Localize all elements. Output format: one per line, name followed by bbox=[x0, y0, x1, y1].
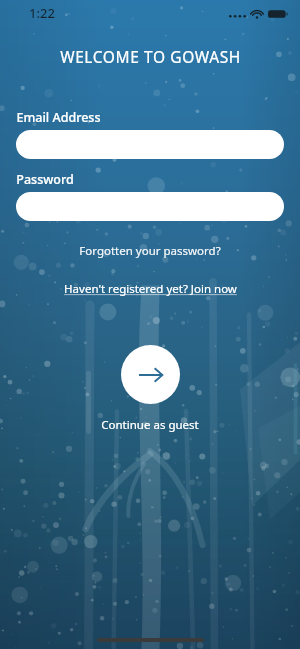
staticText: Haven't registered yet? Join now bbox=[64, 281, 237, 297]
button[interactable]: Continue as guest bbox=[0, 415, 300, 435]
button[interactable]: Haven't registered yet? Join now bbox=[0, 277, 300, 301]
button[interactable]: Text field bbox=[16, 192, 284, 221]
staticText: Continue as guest bbox=[101, 417, 199, 433]
staticText: Email Address bbox=[16, 109, 101, 126]
button[interactable]: Continue bbox=[121, 345, 180, 404]
staticText: Password bbox=[16, 171, 74, 188]
staticText: Forgotten your password? bbox=[79, 243, 221, 259]
button[interactable]: Text field bbox=[16, 130, 284, 159]
staticText: 1:22 bbox=[29, 4, 55, 22]
staticText: WELCOME TO GOWASH bbox=[60, 46, 241, 67]
button[interactable]: Forgotten your password? bbox=[0, 239, 300, 263]
